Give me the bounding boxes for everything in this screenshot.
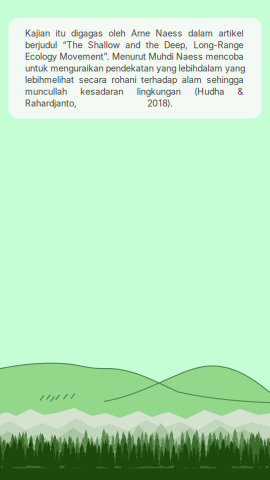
staticText: Menurut [112, 51, 146, 62]
staticText: kesadaran [80, 86, 123, 97]
staticText: artikel [218, 28, 243, 39]
staticText: Ecology [25, 51, 57, 62]
staticText: Rahardjanto, [25, 98, 77, 108]
staticText: and [125, 40, 140, 50]
staticText: Muhdi [148, 51, 173, 62]
staticText: pendekatan [106, 63, 154, 73]
staticText: berjudul [25, 40, 57, 50]
staticText: lingkungan [137, 86, 181, 97]
staticText: lebihdalam [179, 63, 223, 73]
staticText: Arne [131, 28, 150, 39]
staticText: secara [79, 75, 107, 85]
staticText: Naess [155, 28, 182, 39]
staticText: Movement”. [59, 51, 109, 62]
staticText: oleh [108, 28, 125, 39]
staticText: lebihmelihat [25, 75, 74, 85]
staticText: terhadap [141, 75, 177, 85]
staticText: yang [156, 63, 176, 73]
staticText: (Hudha [194, 86, 224, 97]
staticText: menguraikan [50, 63, 103, 73]
staticText: dalam [188, 28, 213, 39]
staticText: mencoba [205, 51, 243, 62]
staticText: itu [55, 28, 65, 39]
staticText: & [237, 86, 243, 97]
staticText: Kajian [25, 28, 50, 39]
staticText: yang [225, 63, 245, 73]
staticText: Long-Range [193, 40, 243, 50]
staticText: rohani [111, 75, 136, 85]
staticText: untuk [25, 63, 48, 73]
staticText: “The [62, 40, 82, 50]
staticText: muncullah [25, 86, 67, 97]
staticText: 2018). [147, 98, 173, 108]
staticText: sehingga [206, 75, 243, 85]
staticText: Naess [176, 51, 203, 62]
staticText: Deep, [164, 40, 188, 50]
staticText: alam [182, 75, 202, 85]
staticText: digagas [71, 28, 103, 39]
staticText: the [146, 40, 159, 50]
staticText: Shallow [88, 40, 120, 50]
